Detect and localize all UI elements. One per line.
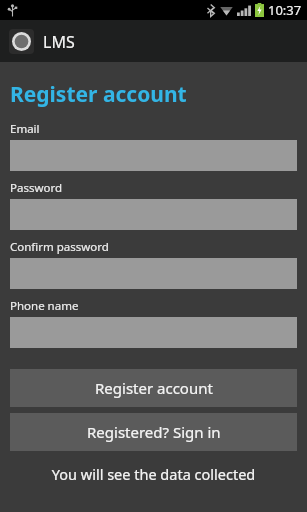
staticText: Password — [10, 180, 63, 196]
staticText: 10:37 — [268, 1, 302, 19]
staticText: LMS — [43, 31, 75, 53]
button[interactable]: Register account — [10, 369, 297, 407]
staticText: Phone name — [10, 298, 79, 314]
button[interactable]: Registered? Sign in — [10, 413, 297, 451]
button[interactable]: LMS home — [9, 29, 75, 54]
staticText: Email — [10, 121, 40, 137]
staticText: Register account — [10, 80, 187, 109]
staticText: Registered? Sign in — [87, 422, 221, 442]
staticText: Register account — [95, 378, 213, 398]
staticText: Confirm password — [10, 239, 109, 255]
staticText: You will see the data collected — [10, 464, 297, 484]
